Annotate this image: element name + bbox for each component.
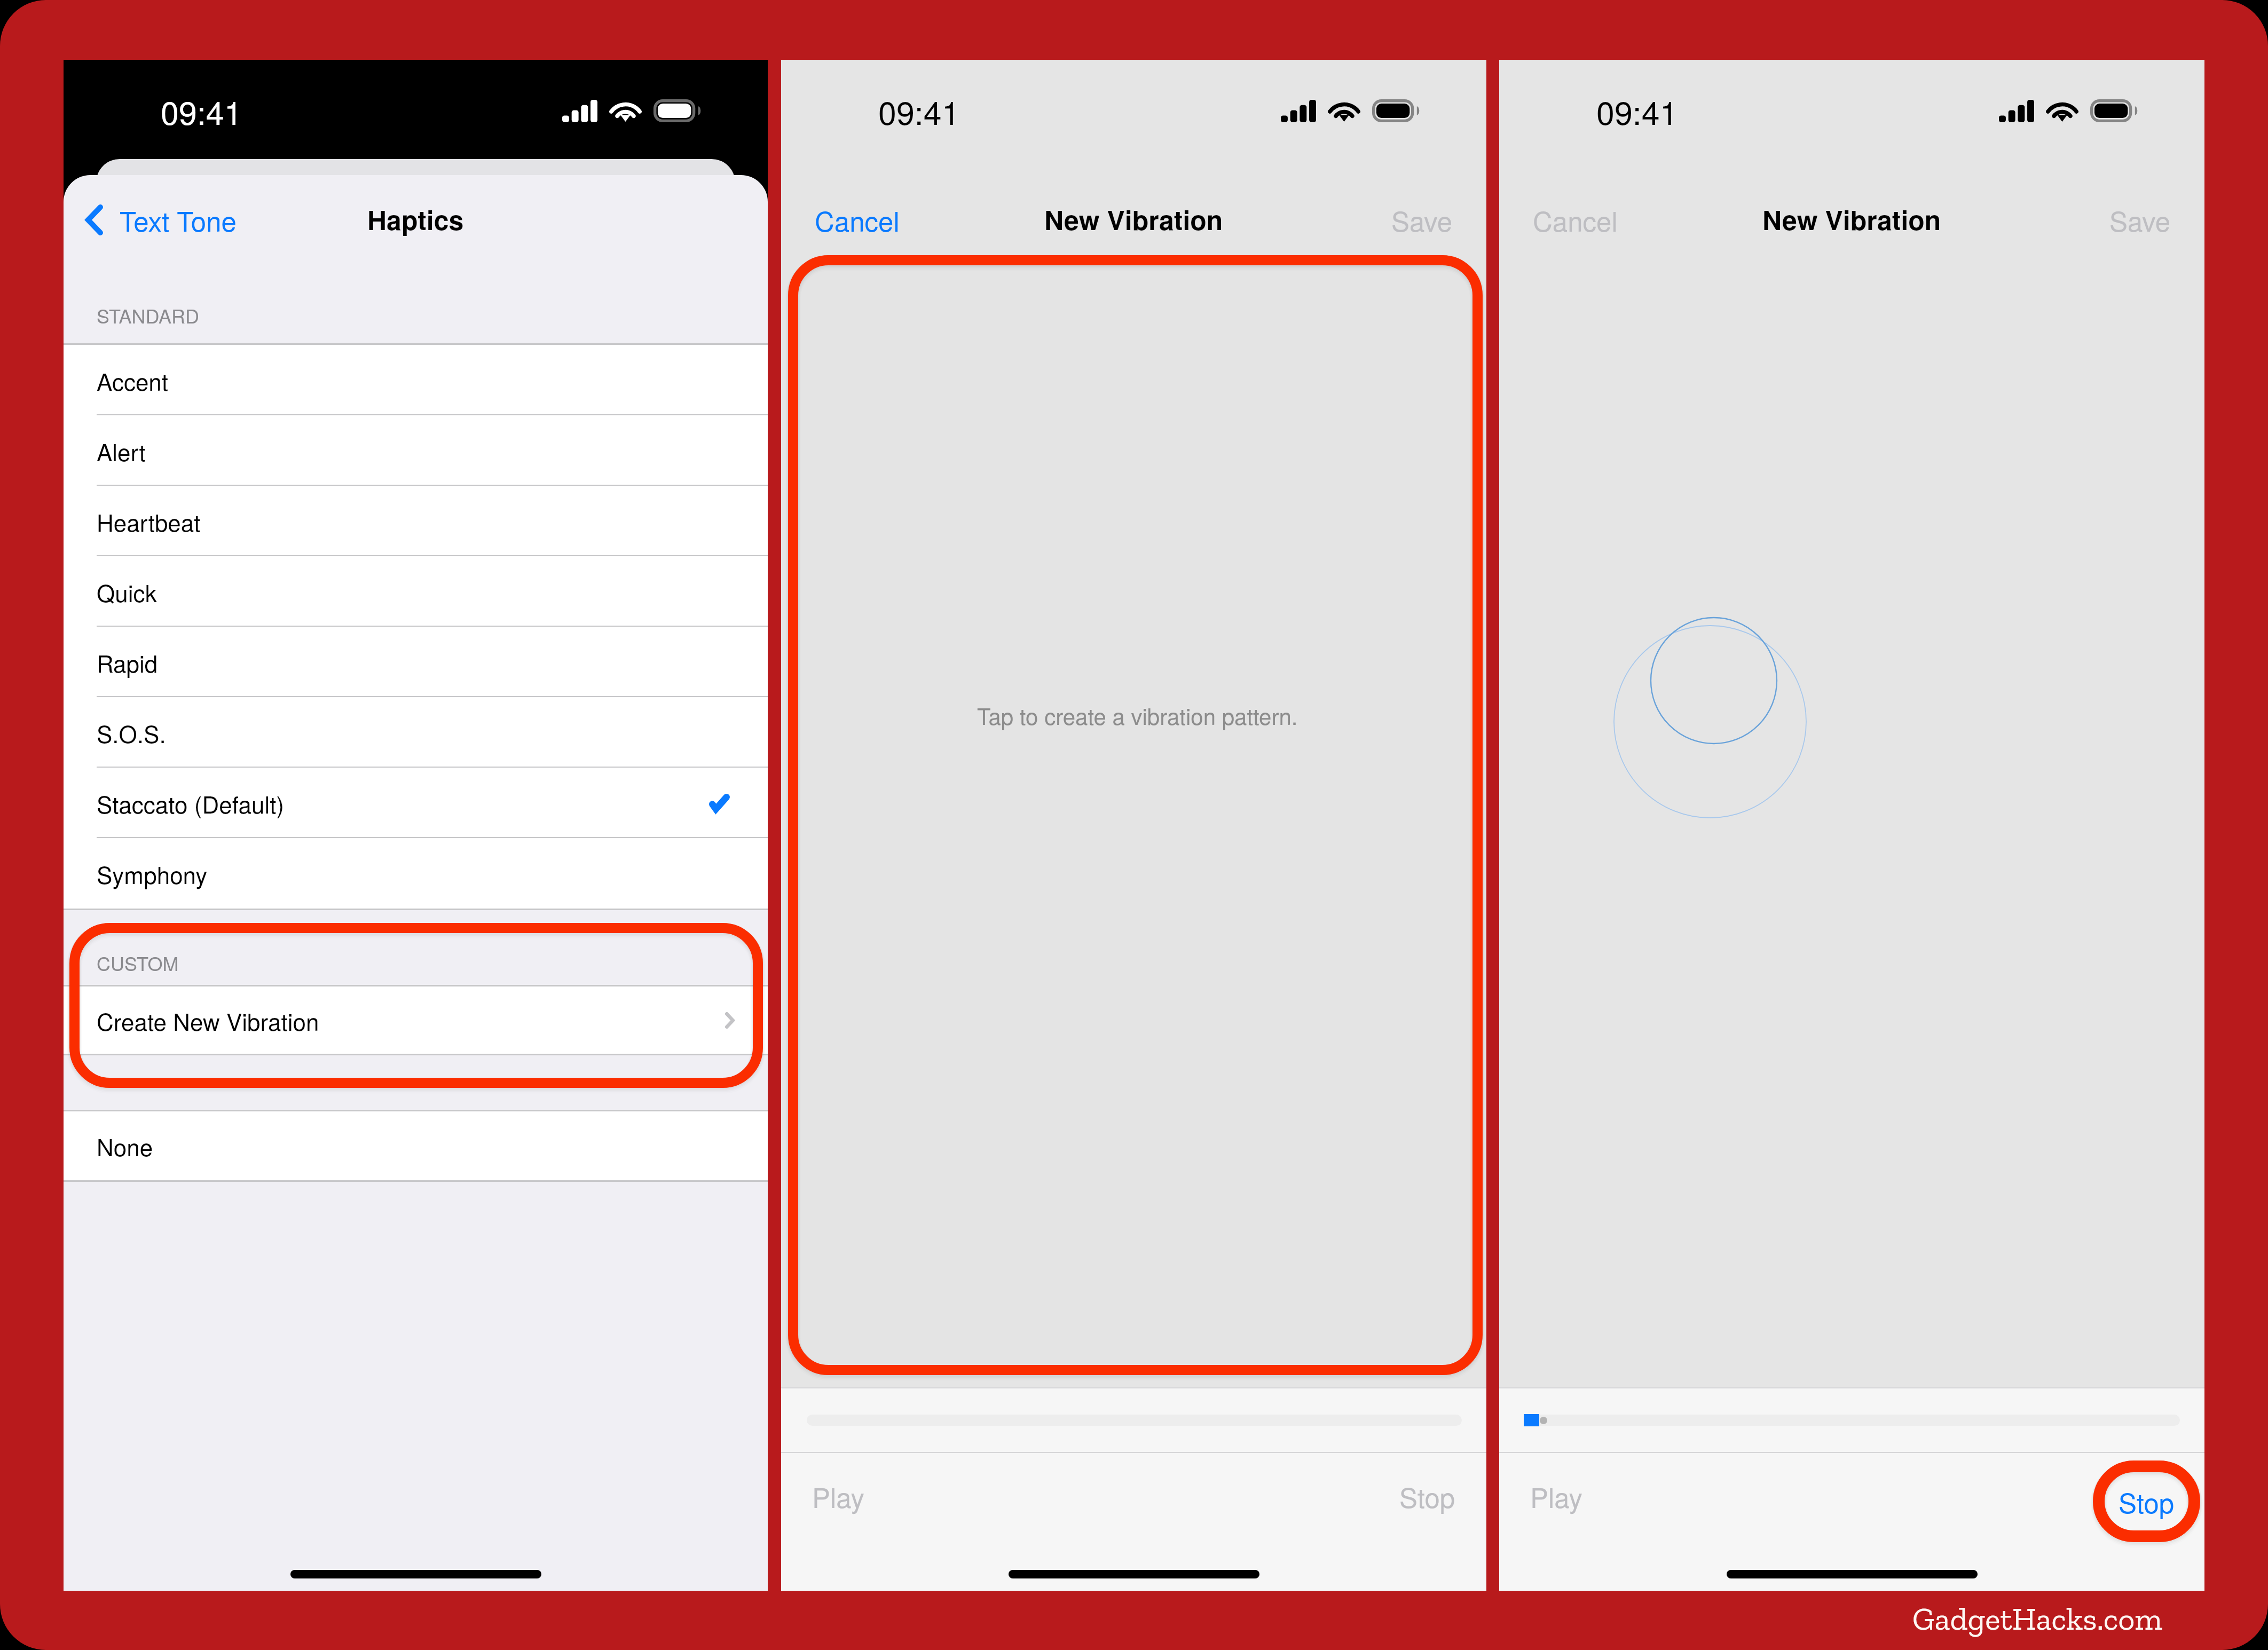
staticText: Stop xyxy=(1399,1477,1455,1515)
other: Back xyxy=(85,204,103,235)
button[interactable]: Stop xyxy=(2093,1460,2200,1542)
staticText: 09:41 xyxy=(878,88,960,134)
button[interactable]: Staccato (Default) xyxy=(64,768,768,838)
button[interactable]: Play xyxy=(781,1453,895,1528)
button[interactable]: Quick xyxy=(64,556,768,627)
staticText: Accent xyxy=(97,364,169,397)
staticText: Stop xyxy=(2119,1482,2175,1521)
staticText: Alert xyxy=(97,434,146,468)
staticText: New Vibration xyxy=(1762,200,1941,239)
button[interactable]: Rapid xyxy=(64,627,768,697)
button[interactable]: Vibration pattern drawing area xyxy=(792,259,1479,1371)
button[interactable]: Heartbeat xyxy=(64,486,768,556)
staticText: Haptics xyxy=(367,200,464,239)
staticText: Rapid xyxy=(97,645,158,679)
staticText: Create New Vibration xyxy=(97,1004,319,1037)
staticText: Save xyxy=(2109,200,2171,239)
button[interactable]: S.O.S. xyxy=(64,697,768,768)
button[interactable]: Create New Vibration xyxy=(64,985,768,1055)
staticText: GadgetHacks.com xyxy=(1912,1599,2163,1638)
button[interactable]: Save xyxy=(1370,175,1486,264)
staticText: Symphony xyxy=(97,857,208,890)
staticText: Save xyxy=(1391,200,1453,239)
staticText: Text Tone xyxy=(120,200,237,239)
staticText: Tap to create a vibration pattern. xyxy=(977,699,1298,731)
staticText: Cancel xyxy=(1533,200,1618,239)
staticText: Play xyxy=(1530,1477,1582,1515)
staticText: 09:41 xyxy=(1596,88,1678,134)
button[interactable]: Symphony xyxy=(64,838,768,909)
button[interactable]: Alert xyxy=(64,415,768,486)
button[interactable]: Play xyxy=(1499,1453,1613,1528)
staticText: Cancel xyxy=(815,200,900,239)
button[interactable]: None xyxy=(64,1110,768,1182)
staticText: Play xyxy=(812,1477,864,1515)
button[interactable]: Accent xyxy=(64,345,768,415)
staticText: Heartbeat xyxy=(97,504,201,538)
staticText: New Vibration xyxy=(1044,200,1223,239)
button[interactable]: Cancel xyxy=(1499,175,1639,264)
staticText: STANDARD xyxy=(97,302,200,329)
staticText: Quick xyxy=(97,575,157,609)
staticText: CUSTOM xyxy=(97,949,179,977)
staticText: Staccato (Default) xyxy=(97,786,285,820)
staticText: S.O.S. xyxy=(97,716,166,749)
button[interactable]: Save xyxy=(2088,175,2204,264)
staticText: 09:41 xyxy=(161,88,242,134)
staticText: None xyxy=(97,1129,153,1163)
button[interactable]: Back xyxy=(85,200,237,239)
button[interactable]: Stop xyxy=(1368,1453,1486,1528)
button[interactable]: Cancel xyxy=(781,175,921,264)
